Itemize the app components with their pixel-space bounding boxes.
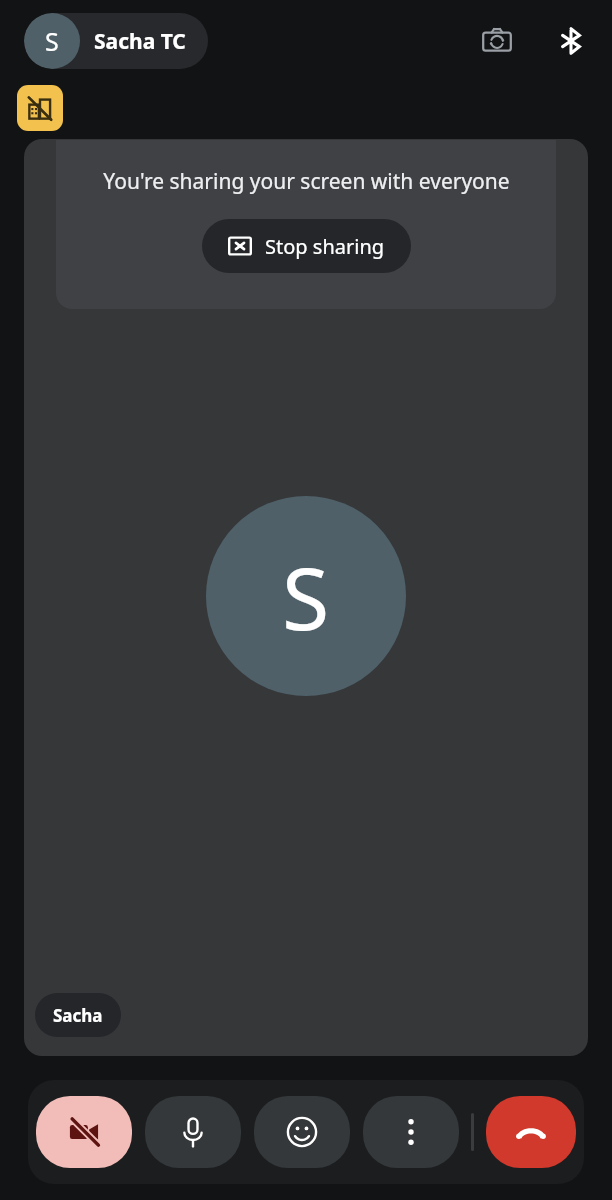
button[interactable]: Sacha (35, 993, 121, 1037)
staticText: Sacha TC (94, 27, 186, 56)
staticText: S (45, 24, 59, 58)
staticText: S (282, 538, 330, 655)
button[interactable]: Switch camera (474, 18, 520, 64)
button[interactable]: Mute microphone (145, 1096, 241, 1168)
button[interactable]: Turn on camera (36, 1096, 132, 1168)
button[interactable]: Stop sharing (202, 219, 411, 273)
button[interactable]: S (24, 13, 208, 69)
button[interactable]: Bluetooth audio (548, 18, 594, 64)
button[interactable]: Leave call (486, 1096, 576, 1168)
staticText: Stop sharing (265, 233, 385, 260)
staticText: Sacha (53, 1004, 103, 1027)
staticText: You're sharing your screen with everyone (103, 167, 510, 196)
button[interactable]: Meeting not hosted by your organisation (17, 85, 63, 131)
button[interactable]: More options (363, 1096, 459, 1168)
button[interactable]: Send a reaction (254, 1096, 350, 1168)
